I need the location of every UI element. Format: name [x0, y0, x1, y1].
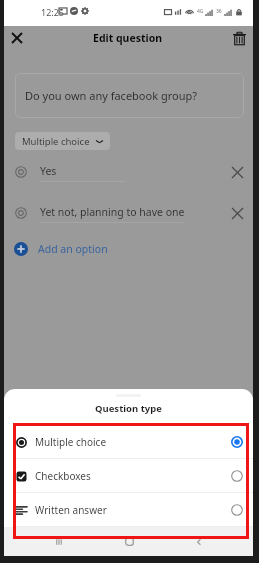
button[interactable]: Yes [4, 160, 253, 190]
button[interactable]: Written answer [4, 493, 253, 527]
staticText: 36 [216, 8, 222, 15]
staticText: 4G [197, 8, 204, 15]
staticText: Edit question [93, 31, 163, 45]
button[interactable]: Remove option [225, 201, 249, 225]
button[interactable]: Yet not, planning to have one [4, 201, 253, 231]
button[interactable]: Home [94, 529, 164, 554]
staticText: Yes [40, 164, 57, 178]
button[interactable]: Multiple choice [15, 132, 110, 150]
button[interactable]: Recents [23, 529, 94, 554]
staticText: Yet not, planning to have one [40, 205, 185, 219]
staticText: Question type [95, 402, 162, 415]
staticText: Add an option [38, 242, 108, 256]
button[interactable]: Checkboxes [4, 459, 253, 493]
button[interactable]: Add an option [14, 240, 108, 258]
button[interactable]: Remove option [225, 160, 249, 184]
staticText: 12:25 [41, 6, 65, 18]
staticText: Checkboxes [35, 469, 91, 483]
staticText: Multiple choice [22, 135, 90, 148]
staticText: Written answer [35, 503, 107, 517]
button[interactable]: Multiple choice [4, 425, 253, 459]
button[interactable]: Delete [227, 26, 251, 50]
staticText: Do you own any facebook group? [25, 88, 197, 103]
button[interactable]: Back [164, 529, 234, 554]
button[interactable]: Close [5, 26, 29, 50]
staticText: Multiple choice [35, 435, 107, 449]
